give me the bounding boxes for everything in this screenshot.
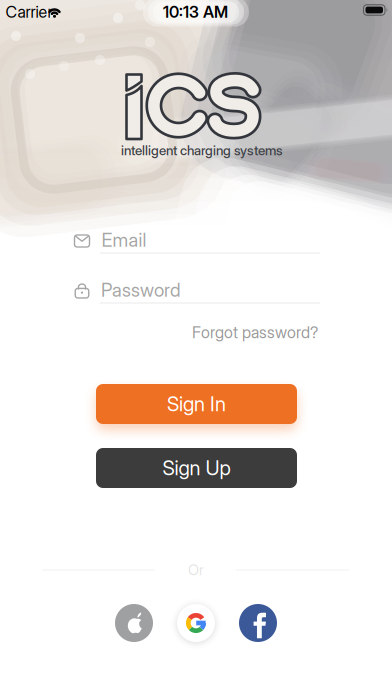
button[interactable]: Sign in with Apple (115, 604, 153, 642)
staticText: Sign Up (162, 456, 230, 480)
staticText: Carrier (5, 3, 52, 21)
staticText: 10:13 AM (163, 3, 228, 21)
staticText: Email (101, 229, 146, 251)
staticText: Sign In (167, 392, 226, 416)
staticText: Password (101, 279, 181, 301)
button[interactable]: Forgot password? (192, 323, 318, 342)
button[interactable]: Sign in with Google (177, 604, 215, 642)
button[interactable]: Sign In (96, 384, 297, 424)
staticText: Or (188, 561, 204, 579)
button[interactable]: Sign in with Facebook (239, 604, 277, 642)
button[interactable]: Sign Up (96, 448, 297, 488)
staticText: intelligent charging systems (121, 143, 283, 158)
staticText: Forgot password? (192, 323, 318, 342)
